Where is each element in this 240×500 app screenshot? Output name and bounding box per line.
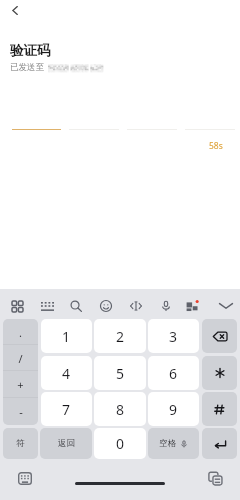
- staticText: 已发送至: [10, 62, 44, 73]
- button[interactable]: /: [3, 345, 38, 371]
- button[interactable]: Collapse keyboard: [215, 295, 237, 317]
- button[interactable]: .: [3, 319, 38, 345]
- staticText: 0: [116, 434, 125, 453]
- staticText: 9: [169, 400, 178, 419]
- button[interactable]: 6: [148, 356, 199, 390]
- button[interactable]: 3: [148, 319, 199, 353]
- button[interactable]: 1: [41, 319, 92, 353]
- button[interactable]: 0: [94, 428, 146, 459]
- staticText: 验证码: [10, 42, 51, 59]
- button[interactable]: Keyboard layout: [36, 295, 58, 317]
- button[interactable]: Voice input: [155, 295, 177, 317]
- staticText: 6: [169, 364, 178, 383]
- staticText: 空格: [159, 438, 176, 449]
- button[interactable]: 8: [94, 392, 146, 426]
- button[interactable]: 符: [3, 428, 38, 459]
- staticText: 4: [62, 364, 71, 383]
- button[interactable]: 58s: [209, 140, 223, 152]
- staticText: 3: [169, 327, 178, 346]
- button[interactable]: [202, 319, 237, 353]
- button[interactable]: Emoji: [95, 295, 117, 317]
- button[interactable]: [202, 428, 237, 459]
- button[interactable]: Search: [65, 295, 87, 317]
- button[interactable]: 7: [41, 392, 92, 426]
- button[interactable]: Recent apps: [204, 467, 226, 489]
- staticText: .: [19, 325, 22, 340]
- staticText: 1: [62, 327, 71, 346]
- staticText: 8: [116, 400, 125, 419]
- staticText: +: [17, 377, 24, 392]
- button[interactable]: Themes: [181, 295, 203, 317]
- staticText: 7: [62, 400, 71, 419]
- staticText: /: [18, 351, 23, 366]
- staticText: 5: [116, 364, 125, 383]
- staticText: 返回: [58, 438, 75, 449]
- button[interactable]: [202, 392, 237, 426]
- staticText: 符: [16, 438, 25, 449]
- button[interactable]: -: [3, 398, 38, 425]
- button[interactable]: Back: [2, 0, 28, 23]
- staticText: -: [19, 404, 23, 419]
- button[interactable]: 4: [41, 356, 92, 390]
- button[interactable]: Switch keyboard: [14, 467, 36, 489]
- staticText: 2: [116, 327, 125, 346]
- button[interactable]: +: [3, 371, 38, 398]
- staticText: 58s: [209, 140, 223, 152]
- button[interactable]: Move cursor: [125, 295, 147, 317]
- button[interactable]: 5: [94, 356, 146, 390]
- button[interactable]: 2: [94, 319, 146, 353]
- button[interactable]: 9: [148, 392, 199, 426]
- button[interactable]: 空格: [148, 428, 199, 459]
- button[interactable]: Panels: [6, 295, 28, 317]
- button[interactable]: 返回: [40, 428, 92, 459]
- button[interactable]: [202, 356, 237, 390]
